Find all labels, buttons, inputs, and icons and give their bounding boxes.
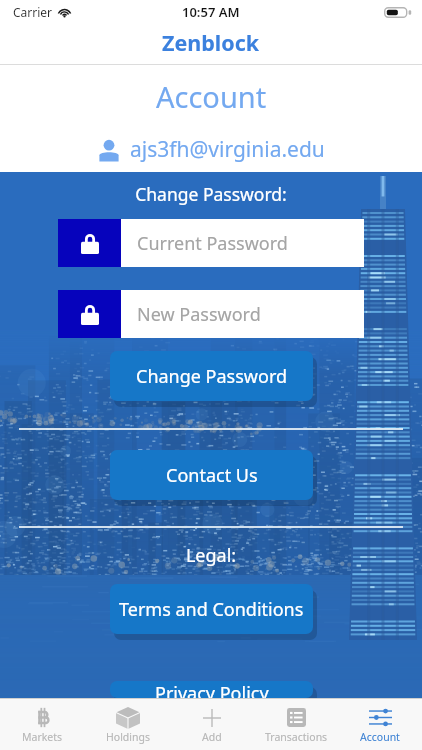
- staticText: ajs3fh@virginia.edu: [130, 135, 325, 164]
- staticText: Change Password: [136, 364, 288, 389]
- staticText: Add: [202, 730, 222, 744]
- button[interactable]: Holdings: [85, 699, 170, 750]
- staticText: Terms and Conditions: [119, 597, 304, 622]
- staticText: Current Password: [137, 231, 288, 256]
- staticText: 10:57 AM: [182, 3, 240, 21]
- staticText: New Password: [137, 302, 261, 327]
- button[interactable]: Transactions: [254, 699, 338, 750]
- button[interactable]: Markets: [0, 699, 85, 750]
- staticText: Markets: [22, 730, 63, 744]
- staticText: Zenblock: [162, 28, 260, 57]
- button[interactable]: Account: [338, 699, 422, 750]
- button[interactable]: Change Password: [110, 351, 313, 401]
- staticText: Account: [360, 730, 400, 744]
- button[interactable]: Privacy Policy: [110, 681, 313, 698]
- button[interactable]: Add: [170, 699, 254, 750]
- staticText: Transactions: [265, 730, 328, 744]
- staticText: Legal:: [0, 543, 422, 568]
- staticText: Privacy Policy: [155, 681, 269, 698]
- staticText: Account: [156, 77, 267, 116]
- button[interactable]: Contact Us: [110, 450, 313, 500]
- staticText: Contact Us: [166, 463, 258, 488]
- button[interactable]: Terms and Conditions: [110, 584, 313, 634]
- staticText: Change Password:: [0, 182, 422, 206]
- staticText: Carrier: [13, 4, 53, 20]
- staticText: Holdings: [106, 730, 150, 744]
